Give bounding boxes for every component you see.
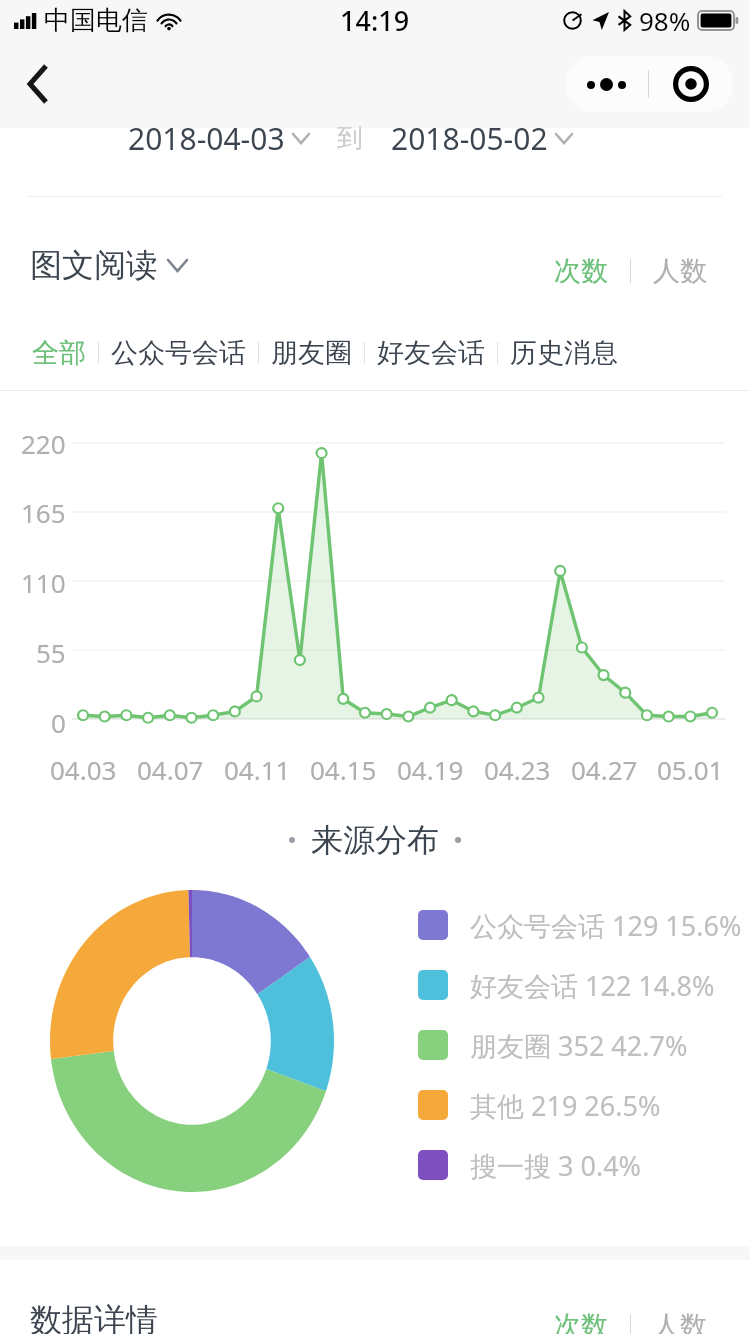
button[interactable]: 人数 [649, 1305, 711, 1334]
button[interactable]: 公众号会话 [99, 330, 258, 376]
staticText: 98% [639, 3, 691, 38]
button[interactable]: 历史消息 [498, 330, 630, 376]
staticText: 0 [51, 705, 66, 735]
button[interactable]: 人数 [649, 250, 711, 292]
button[interactable]: 朋友圈 [259, 330, 364, 376]
button[interactable]: Close [649, 56, 733, 112]
staticText: 165 [21, 495, 66, 525]
button[interactable]: 搜一搜 3 0.4% [418, 1143, 642, 1187]
staticText: 公众号会话 129 15.6% [470, 907, 742, 944]
button[interactable]: Back [6, 52, 70, 116]
button[interactable]: 其他 219 26.5% [418, 1083, 661, 1127]
staticText: 好友会话 122 14.8% [470, 967, 715, 1004]
staticText: 04.19 [397, 752, 464, 786]
button[interactable]: 好友会话 [365, 330, 497, 376]
staticText: 来源分布 [311, 820, 439, 860]
staticText: 04.27 [571, 752, 638, 786]
staticText: 2018-05-02 [391, 118, 548, 159]
staticText: 110 [21, 565, 66, 595]
staticText: 次数 [554, 1309, 608, 1334]
staticText: 04.07 [137, 752, 204, 786]
button[interactable]: 好友会话 122 14.8% [418, 963, 715, 1007]
button[interactable]: 次数 [550, 1305, 612, 1334]
staticText: 全部 [32, 336, 86, 370]
button[interactable]: 次数 [550, 250, 612, 292]
staticText: 好友会话 [377, 336, 485, 370]
staticText: 图文阅读 [30, 245, 158, 285]
staticText: 公众号会话 [111, 336, 246, 370]
staticText: 人数 [653, 254, 707, 288]
staticText: 数据详情 [30, 1300, 158, 1334]
staticText: 14:19 [340, 2, 410, 39]
staticText: 05.01 [657, 752, 724, 786]
staticText: 次数 [554, 254, 608, 288]
button[interactable]: 朋友圈 352 42.7% [418, 1023, 688, 1067]
staticText: 04.23 [484, 752, 551, 786]
staticText: 其他 219 26.5% [470, 1087, 661, 1124]
staticText: 搜一搜 3 0.4% [470, 1147, 642, 1184]
staticText: 到 [337, 122, 363, 155]
button[interactable]: 全部 [20, 330, 98, 376]
staticText: 人数 [653, 1309, 707, 1334]
button[interactable]: 2018-05-02 [391, 118, 572, 159]
button[interactable]: 图文阅读 [30, 245, 187, 285]
staticText: 中国电信 [44, 4, 148, 37]
staticText: 220 [21, 426, 66, 456]
button[interactable]: More options [565, 56, 648, 112]
staticText: 历史消息 [510, 336, 618, 370]
staticText: 2018-04-03 [128, 118, 285, 159]
button[interactable]: 公众号会话 129 15.6% [418, 903, 742, 947]
staticText: 04.03 [50, 752, 117, 786]
staticText: 04.15 [310, 752, 377, 786]
staticText: 朋友圈 [271, 336, 352, 370]
button[interactable]: 2018-04-03 [128, 118, 309, 159]
staticText: 04.11 [224, 752, 291, 786]
staticText: 55 [36, 635, 66, 665]
staticText: 朋友圈 352 42.7% [470, 1027, 688, 1064]
